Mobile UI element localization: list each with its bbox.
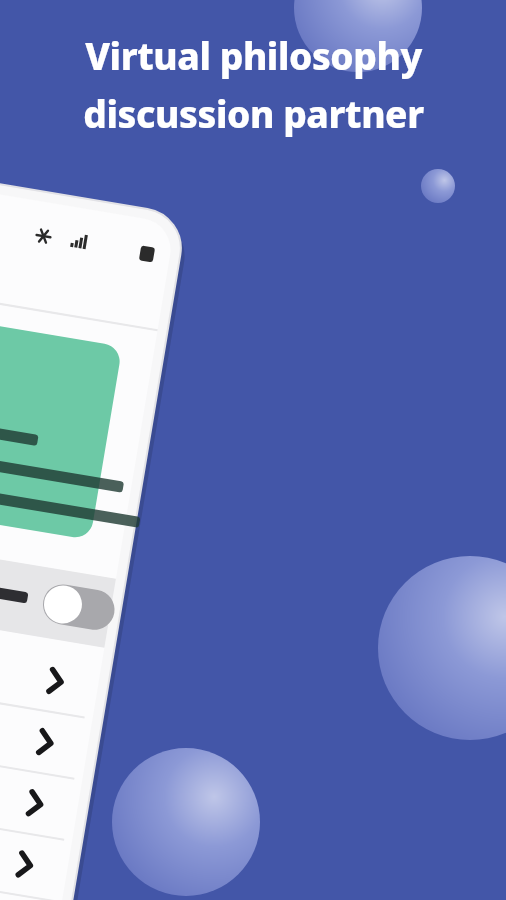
button[interactable]: Virtual philosophy — [18, 30, 488, 138]
button[interactable]: Light theme toggle — [0, 500, 150, 550]
staticText: Virtual philosophy — [85, 30, 422, 80]
staticText: discussion partner — [83, 88, 424, 138]
